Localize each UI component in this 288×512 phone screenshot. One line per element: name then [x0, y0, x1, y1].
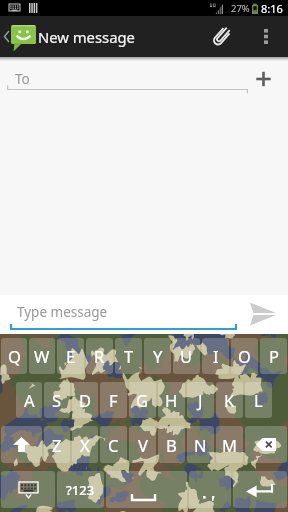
staticText: G	[136, 389, 149, 411]
other: Navigate up	[0, 16, 37, 57]
button[interactable]: Z	[44, 426, 70, 463]
button[interactable]: L	[245, 382, 272, 418]
staticText: ?123	[66, 481, 95, 499]
button[interactable]: Navigate up	[0, 16, 288, 57]
button[interactable]: Hide keyboard	[1, 471, 55, 508]
staticText: L	[254, 389, 263, 411]
staticText: Q	[8, 345, 21, 367]
staticText: F	[109, 389, 118, 411]
staticText: N	[194, 434, 207, 456]
button[interactable]: Y	[144, 338, 171, 374]
button[interactable]: M	[216, 426, 243, 463]
button[interactable]: U	[173, 338, 200, 374]
button[interactable]: O	[231, 338, 258, 374]
staticText: Type message	[17, 303, 108, 321]
staticText: K	[224, 389, 235, 411]
button[interactable]: E	[57, 338, 84, 374]
button[interactable]: P	[260, 338, 287, 374]
staticText: O	[238, 345, 251, 367]
button[interactable]: Shift	[1, 426, 42, 463]
button[interactable]: R	[86, 338, 113, 374]
button[interactable]: K	[216, 382, 243, 418]
button[interactable]: T	[115, 338, 142, 374]
button[interactable]: G	[129, 382, 156, 418]
staticText: M	[222, 434, 237, 456]
button[interactable]: ?123	[57, 471, 104, 508]
button[interactable]: X	[72, 426, 98, 463]
button[interactable]: S	[44, 382, 70, 418]
staticText: New message	[38, 27, 135, 47]
button[interactable]: B	[158, 426, 185, 463]
staticText: C	[108, 434, 119, 456]
button[interactable]: Add recipient	[242, 57, 288, 103]
staticText: E	[66, 345, 76, 367]
button[interactable]: Period	[189, 471, 231, 508]
staticText: T	[124, 345, 134, 367]
button[interactable]: To	[0, 57, 288, 103]
staticText: R	[94, 345, 105, 367]
button[interactable]: I	[202, 338, 229, 374]
staticText: P	[269, 345, 279, 367]
button[interactable]: H	[158, 382, 185, 418]
staticText: U	[180, 345, 193, 367]
button[interactable]: More options	[244, 16, 288, 57]
button[interactable]: D	[72, 382, 98, 418]
staticText: A	[24, 389, 35, 411]
staticText: X	[80, 434, 90, 456]
button[interactable]: Q	[1, 338, 27, 374]
staticText: To	[15, 70, 30, 88]
staticText: Z	[52, 434, 62, 456]
button[interactable]: Enter	[233, 471, 287, 508]
button[interactable]: A	[16, 382, 42, 418]
staticText: B	[166, 434, 177, 456]
staticText: V	[138, 434, 148, 456]
button[interactable]: F	[100, 382, 127, 418]
staticText: Y	[153, 345, 163, 367]
staticText: 27%	[231, 2, 250, 15]
button[interactable]: C	[100, 426, 127, 463]
staticText: W	[34, 345, 50, 367]
staticText: J	[198, 389, 203, 411]
staticText: H	[165, 389, 178, 411]
staticText: D	[79, 389, 92, 411]
button[interactable]: Space	[106, 471, 187, 508]
button[interactable]: Send	[240, 295, 288, 334]
staticText: 8:16	[261, 1, 283, 16]
staticText: I	[213, 345, 219, 367]
staticText: S	[52, 389, 62, 411]
button[interactable]: N	[187, 426, 214, 463]
button[interactable]: Backspace	[245, 426, 287, 463]
button[interactable]: Type message	[0, 295, 288, 334]
button[interactable]: V	[129, 426, 156, 463]
button[interactable]: J	[187, 382, 214, 418]
button[interactable]: Attach	[199, 16, 244, 57]
button[interactable]: W	[29, 338, 55, 374]
